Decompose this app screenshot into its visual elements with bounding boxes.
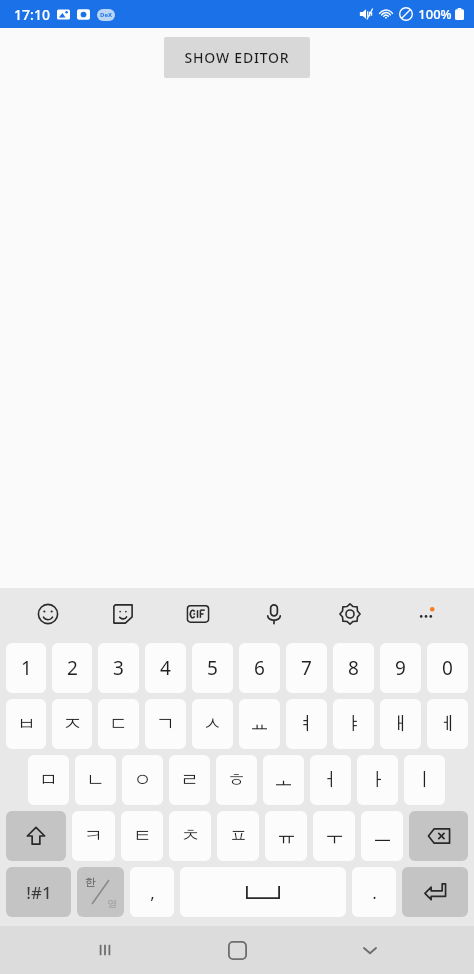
staticText: ㄹ [180,768,199,792]
staticText: 한 [85,875,96,889]
button[interactable]: Settings [312,588,388,640]
staticText: 100% [418,5,452,23]
button[interactable]: ㄴ [75,755,116,805]
staticText: ㅁ [39,768,58,792]
button[interactable]: GIF [160,588,236,640]
staticText: ㅋ [84,824,103,848]
button[interactable]: 3 [98,643,139,693]
button[interactable]: ㅋ [72,811,115,861]
button[interactable]: 2 [52,643,92,693]
staticText: ㅍ [229,824,248,848]
button[interactable]: Sticker [85,588,160,640]
button[interactable]: Home [209,926,265,974]
staticText: ㅠ [277,824,296,848]
button[interactable]: Space [180,867,346,917]
button[interactable]: ㅛ [239,699,280,749]
staticText: 17:10 [14,5,50,24]
button[interactable]: ㅠ [265,811,307,861]
button[interactable]: ㅍ [217,811,259,861]
button[interactable]: 8 [333,643,374,693]
staticText: 영 [107,897,117,910]
button[interactable]: 4 [145,643,186,693]
button[interactable]: ㅡ [361,811,403,861]
staticText: 3 [113,655,124,681]
staticText: ㅔ [438,712,457,736]
staticText: ㅗ [274,768,293,792]
button[interactable]: ㅇ [122,755,163,805]
button[interactable]: . [352,867,396,917]
button[interactable]: ㄹ [169,755,210,805]
staticText: ㅂ [17,712,36,736]
button[interactable]: Recent apps [77,926,133,974]
button[interactable]: ㅕ [286,699,327,749]
button[interactable]: ㅔ [427,699,468,749]
button[interactable]: Voice input [236,588,312,640]
staticText: 1 [21,655,32,681]
button[interactable]: ㅎ [216,755,257,805]
staticText: 2 [67,655,78,681]
button[interactable]: 7 [286,643,327,693]
button[interactable]: 6 [239,643,280,693]
button[interactable]: ㄱ [145,699,186,749]
button[interactable]: 1 [6,643,46,693]
button[interactable]: ㅂ [6,699,46,749]
staticText: ㄴ [86,768,105,792]
staticText: 5 [207,655,218,681]
button[interactable]: More options [388,588,464,640]
staticText: ㅓ [321,768,340,792]
button[interactable]: Enter [402,867,468,917]
staticText: ㅜ [325,824,344,848]
button[interactable]: Emoji [10,588,85,640]
button[interactable]: Korean English toggle [77,867,124,917]
button[interactable]: ㅌ [121,811,163,861]
staticText: ㅅ [203,712,222,736]
button[interactable]: Backspace [409,811,468,861]
staticText: 6 [254,655,265,681]
staticText: 0 [442,655,453,681]
button[interactable]: ㄷ [98,699,139,749]
staticText: ㅏ [368,768,387,792]
button[interactable]: ㅁ [28,755,69,805]
button[interactable]: !#1 [6,867,71,917]
button[interactable]: ㅊ [169,811,211,861]
button[interactable]: Hide keyboard [342,926,398,974]
button[interactable]: Shift [6,811,66,861]
button[interactable]: ㅐ [380,699,421,749]
staticText: DeX [100,11,112,19]
staticText: 4 [160,655,171,681]
button[interactable]: ㅈ [52,699,92,749]
button[interactable]: ㅅ [192,699,233,749]
button[interactable]: SHOW EDITOR [164,37,310,78]
staticText: ㅣ [415,768,434,792]
button[interactable]: ㅜ [313,811,355,861]
staticText: !#1 [26,881,52,904]
staticText: ㅈ [63,712,82,736]
staticText: ㅇ [133,768,152,792]
staticText: ㅑ [344,712,363,736]
staticText: 9 [395,655,406,681]
staticText: ㅛ [250,712,269,736]
staticText: ㄷ [109,712,128,736]
staticText: ㄱ [156,712,175,736]
staticText: . [372,881,377,904]
staticText: ㅡ [373,824,392,848]
staticText: ㅎ [227,768,246,792]
staticText: 8 [348,655,359,681]
button[interactable]: ㅏ [357,755,398,805]
staticText: ㅐ [391,712,410,736]
button[interactable]: ㅣ [404,755,445,805]
staticText: ㅊ [181,824,200,848]
staticText: ㅕ [297,712,316,736]
button[interactable]: , [130,867,174,917]
button[interactable]: 9 [380,643,421,693]
button[interactable]: 5 [192,643,233,693]
button[interactable]: ㅓ [310,755,351,805]
staticText: ㅌ [133,824,152,848]
button[interactable]: ㅑ [333,699,374,749]
button[interactable]: 0 [427,643,468,693]
staticText: , [150,881,155,904]
button[interactable]: ㅗ [263,755,304,805]
staticText: 7 [301,655,312,681]
staticText: SHOW EDITOR [184,48,290,67]
